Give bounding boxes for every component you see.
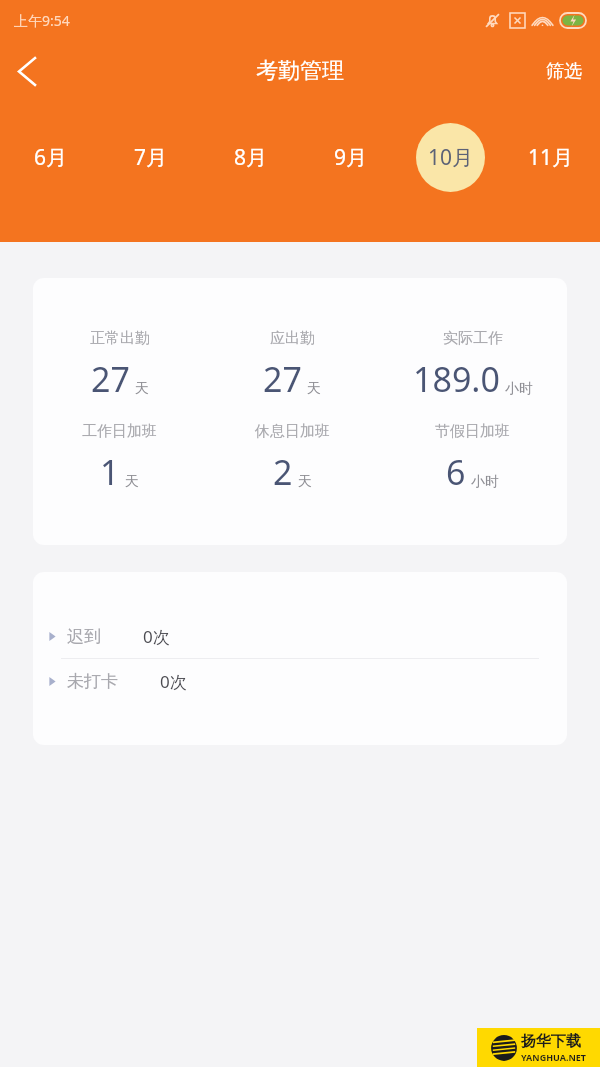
staticText: 未打卡 — [67, 671, 118, 692]
staticText: 休息日加班 — [255, 422, 330, 441]
staticText: 考勤管理 — [256, 57, 344, 85]
button[interactable]: 9月 — [300, 102, 400, 212]
button[interactable]: Back — [0, 44, 54, 98]
staticText: 工作日加班 — [82, 422, 157, 441]
staticText: 6 — [446, 449, 466, 495]
staticText: 小时 — [471, 473, 499, 491]
staticText: 天 — [135, 380, 149, 398]
button[interactable]: 筛选 — [528, 48, 600, 95]
staticText: 0次 — [160, 670, 187, 693]
staticText: 小时 — [505, 380, 533, 398]
staticText: 2 — [273, 449, 293, 495]
staticText: 应出勤 — [270, 329, 315, 348]
staticText: 11月 — [528, 143, 574, 172]
staticText: 节假日加班 — [435, 422, 510, 441]
staticText: 189.0 — [413, 356, 500, 402]
button[interactable]: 11月 — [500, 102, 600, 212]
staticText: 天 — [307, 380, 321, 398]
button[interactable]: 7月 — [100, 102, 200, 212]
staticText: 27 — [91, 356, 130, 402]
staticText: 7月 — [134, 143, 168, 172]
staticText: 天 — [125, 473, 139, 491]
button[interactable]: 未打卡 — [33, 659, 567, 703]
staticText: 天 — [298, 473, 312, 491]
staticText: 1 — [100, 449, 120, 495]
staticText: 上午9:54 — [14, 11, 70, 30]
staticText: YANGHUA.NET — [521, 1051, 587, 1063]
button[interactable]: 8月 — [200, 102, 300, 212]
staticText: 正常出勤 — [90, 329, 150, 348]
button[interactable]: 6月 — [0, 102, 100, 212]
button[interactable]: 10月 — [400, 102, 500, 212]
staticText: 8月 — [234, 143, 268, 172]
button[interactable]: 迟到 — [33, 614, 567, 658]
staticText: 27 — [263, 356, 302, 402]
staticText: 10月 — [428, 143, 474, 172]
staticText: 扬华下载 — [521, 1032, 581, 1051]
staticText: 9月 — [334, 143, 368, 172]
staticText: 筛选 — [546, 60, 582, 83]
staticText: 0次 — [143, 625, 170, 648]
staticText: 实际工作 — [443, 329, 503, 348]
staticText: 6月 — [34, 143, 68, 172]
staticText: 迟到 — [67, 626, 101, 647]
